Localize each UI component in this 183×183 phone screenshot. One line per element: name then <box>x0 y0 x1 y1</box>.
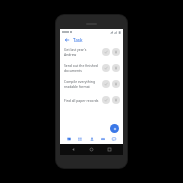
staticText: Get last year's financials from <box>64 47 100 52</box>
button[interactable]: People <box>88 135 96 143</box>
staticText: Andrew <box>64 52 77 57</box>
staticText: documents <box>64 68 82 73</box>
button[interactable]: Complete task <box>102 48 110 56</box>
button[interactable]: Delete task <box>112 48 120 56</box>
button[interactable]: Send out the finished <box>60 60 123 76</box>
button[interactable]: Home <box>87 145 96 154</box>
button[interactable]: Compile everything into a <box>60 76 123 92</box>
staticText: Task <box>73 37 83 43</box>
button[interactable]: Grid <box>76 135 84 143</box>
staticText: Compile everything into a <box>64 79 100 84</box>
button[interactable]: Chat <box>110 135 118 143</box>
button[interactable]: Back <box>63 36 70 43</box>
button[interactable]: Mail <box>99 135 107 143</box>
button[interactable]: Delete task <box>112 80 120 88</box>
button[interactable]: Complete task <box>102 96 110 104</box>
button[interactable]: Delete task <box>112 64 120 72</box>
staticText: readable format <box>64 84 90 89</box>
button[interactable]: Complete task <box>102 80 110 88</box>
staticText: Send out the finished <box>64 63 98 68</box>
button[interactable]: Add task <box>110 124 119 133</box>
button[interactable]: Recents <box>105 145 114 154</box>
button[interactable]: Delete task <box>112 96 120 104</box>
button[interactable]: Back <box>69 145 78 154</box>
staticText: Find all paper records <box>64 98 99 103</box>
button[interactable]: Tasks <box>65 135 73 143</box>
button[interactable]: Complete task <box>102 64 110 72</box>
button[interactable]: Find all paper records <box>60 92 123 108</box>
button[interactable]: Get last year's financials from <box>60 44 123 60</box>
